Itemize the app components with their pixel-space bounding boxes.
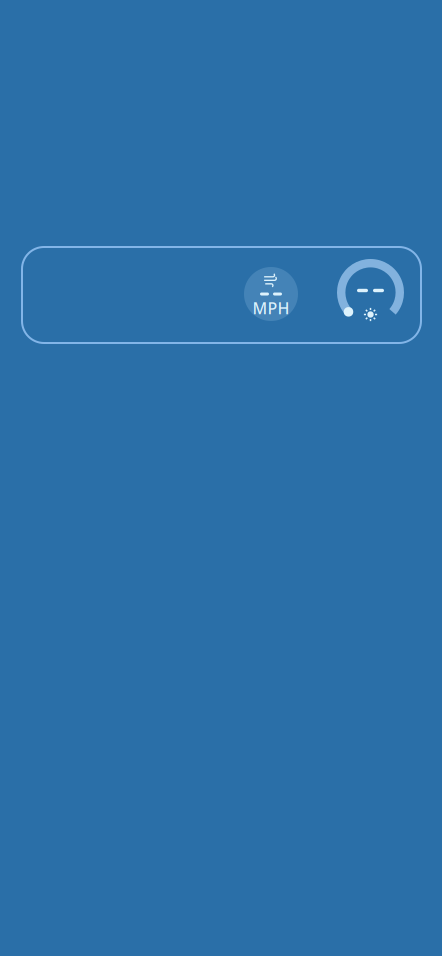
- staticText: MPH: [252, 297, 289, 319]
